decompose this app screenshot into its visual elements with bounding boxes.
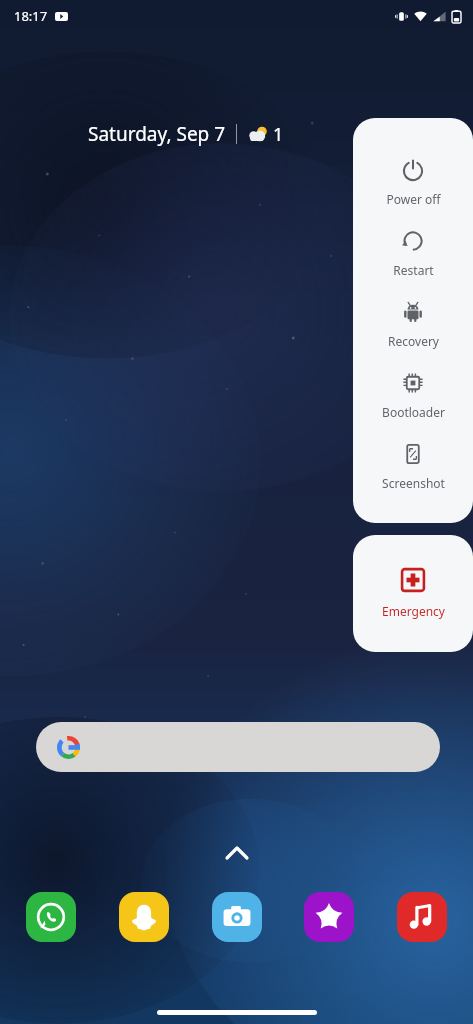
button[interactable]: Music — [397, 892, 447, 942]
staticText: Saturday, Sep 7 — [88, 121, 226, 147]
staticText: Restart — [393, 262, 434, 278]
staticText: Recovery — [388, 333, 439, 349]
button[interactable]: Recovery — [353, 278, 473, 349]
button[interactable]: Gallery — [304, 892, 354, 942]
button[interactable]: Restart — [353, 207, 473, 278]
button[interactable]: Camera — [212, 892, 262, 942]
button[interactable]: Google search — [36, 722, 440, 772]
button[interactable]: WhatsApp — [26, 892, 76, 942]
staticText: Emergency — [382, 603, 445, 619]
staticText: Bootloader — [382, 404, 445, 420]
staticText: 18:17 — [14, 7, 48, 25]
staticText: Screenshot — [382, 475, 445, 491]
button[interactable]: Snapchat — [119, 892, 169, 942]
button[interactable]: Screenshot — [353, 420, 473, 491]
staticText: 1 — [273, 122, 284, 147]
button[interactable]: Emergency — [353, 535, 473, 652]
button[interactable]: Power off — [353, 118, 473, 207]
button[interactable]: Open app drawer — [220, 836, 254, 870]
button[interactable]: Bootloader — [353, 349, 473, 420]
staticText: Power off — [386, 191, 441, 207]
